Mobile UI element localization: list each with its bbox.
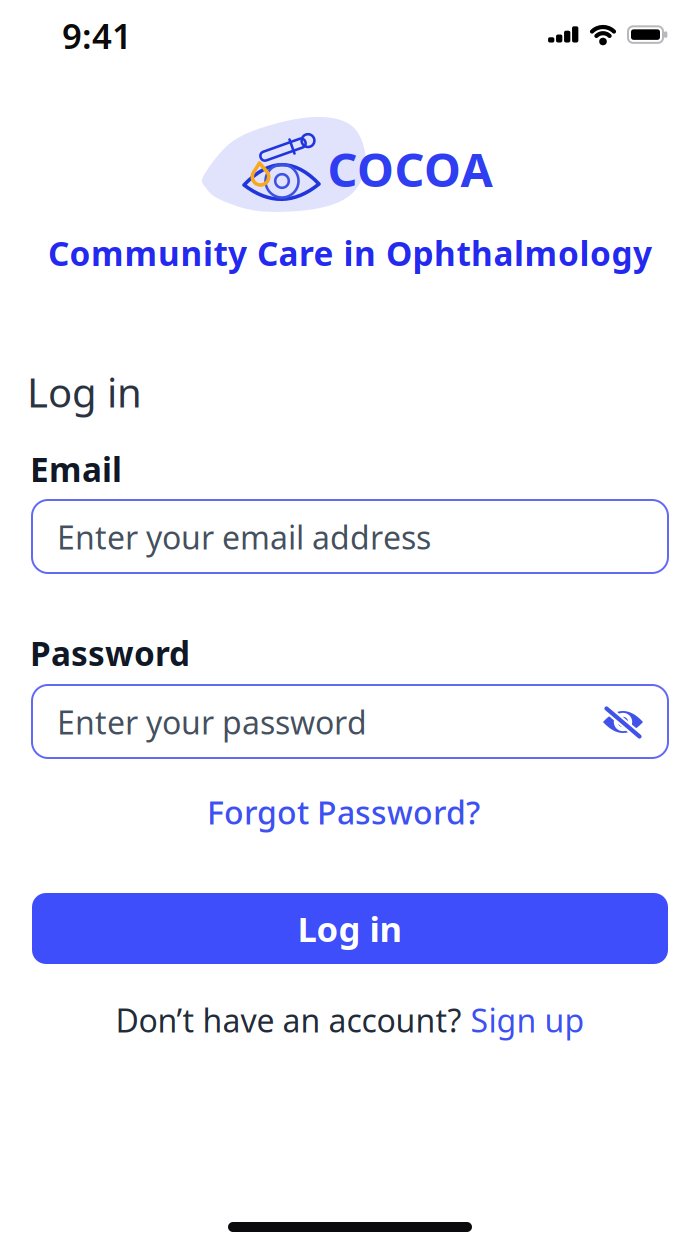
staticText: Forgot Password? xyxy=(207,791,480,833)
staticText: Log in xyxy=(297,905,402,951)
staticText: Log in xyxy=(27,365,142,418)
staticText: Enter your password xyxy=(57,701,367,743)
staticText: Enter your email address xyxy=(57,516,431,558)
staticText: Email xyxy=(30,447,122,491)
staticText: Don’t have an account? xyxy=(115,999,461,1041)
staticText: Sign up xyxy=(470,999,584,1041)
staticText: COCOA xyxy=(327,138,492,200)
staticText: 9:41 xyxy=(62,12,132,58)
staticText: Community Care in Ophthalmology xyxy=(48,231,652,275)
staticText: Password xyxy=(30,631,190,675)
